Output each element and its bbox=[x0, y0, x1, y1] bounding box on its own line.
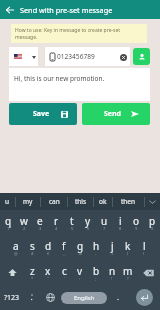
staticText: # bbox=[31, 251, 34, 256]
button[interactable]: Shift bbox=[0, 260, 24, 285]
staticText: o bbox=[133, 214, 140, 228]
staticText: 0123456789 bbox=[57, 52, 95, 61]
button[interactable] bbox=[23, 285, 40, 310]
button[interactable]: Clear bbox=[118, 52, 128, 62]
staticText: Hi, this is our new promotion. bbox=[14, 74, 105, 83]
button[interactable]: ?123 bbox=[0, 285, 23, 310]
button[interactable]: u bbox=[0, 193, 15, 210]
button[interactable]: i bbox=[112, 210, 128, 235]
staticText: ) bbox=[143, 251, 145, 256]
button[interactable]: Change language bbox=[40, 285, 61, 310]
button[interactable]: Hi, this is our new promotion. bbox=[9, 68, 150, 101]
button[interactable]: y bbox=[80, 210, 96, 235]
staticText: b bbox=[93, 264, 100, 278]
staticText: my bbox=[23, 197, 33, 206]
staticText: 1 bbox=[7, 226, 10, 231]
staticText: s bbox=[30, 239, 35, 253]
staticText: ok bbox=[99, 197, 107, 206]
staticText: 7 bbox=[103, 226, 106, 231]
staticText: v bbox=[77, 264, 83, 278]
button[interactable]: w bbox=[16, 210, 32, 235]
staticText: l bbox=[143, 239, 146, 253]
staticText: ( bbox=[127, 251, 129, 256]
button[interactable]: f bbox=[56, 235, 72, 260]
button[interactable]: z bbox=[24, 260, 40, 285]
staticText: 8 bbox=[119, 226, 122, 231]
staticText: u bbox=[101, 214, 108, 228]
staticText: d bbox=[45, 239, 52, 253]
staticText: Send with pre-set message bbox=[20, 5, 113, 15]
button[interactable]: h bbox=[88, 235, 104, 260]
staticText: g bbox=[77, 239, 84, 253]
button[interactable]: ok bbox=[94, 193, 112, 210]
button[interactable]: t bbox=[64, 210, 80, 235]
button[interactable]: then bbox=[113, 193, 144, 210]
staticText: 3 bbox=[39, 226, 42, 231]
button[interactable]: q bbox=[0, 210, 16, 235]
button[interactable]: 0123456789 bbox=[45, 47, 130, 66]
staticText: 9 bbox=[135, 226, 138, 231]
button[interactable]: More suggestions bbox=[145, 193, 160, 210]
staticText: e bbox=[37, 214, 43, 228]
button[interactable]: b bbox=[88, 260, 104, 285]
staticText: How to use: Key in message to create pre… bbox=[15, 27, 121, 41]
button[interactable]: l bbox=[136, 235, 152, 260]
staticText: ! bbox=[111, 276, 113, 281]
button[interactable]: x bbox=[40, 260, 56, 285]
staticText: & bbox=[79, 251, 82, 256]
button[interactable]: a bbox=[8, 235, 24, 260]
button[interactable] bbox=[107, 285, 129, 310]
staticText: 4 bbox=[55, 226, 58, 231]
button[interactable]: Save bbox=[9, 103, 77, 125]
staticText: f bbox=[62, 239, 66, 253]
staticText: a bbox=[13, 239, 19, 253]
button[interactable]: r bbox=[48, 210, 64, 235]
staticText: - bbox=[95, 251, 97, 256]
button[interactable]: Backspace bbox=[136, 260, 160, 285]
button[interactable]: o bbox=[128, 210, 144, 235]
button[interactable]: Select country code bbox=[9, 47, 38, 66]
button[interactable]: n bbox=[104, 260, 120, 285]
button[interactable]: k bbox=[120, 235, 136, 260]
button[interactable]: j bbox=[104, 235, 120, 260]
button[interactable]: d bbox=[40, 235, 56, 260]
staticText: 5 bbox=[71, 226, 74, 231]
button[interactable]: Pick contact bbox=[133, 48, 150, 65]
button[interactable]: g bbox=[72, 235, 88, 260]
button[interactable]: m bbox=[120, 260, 136, 285]
button[interactable]: v bbox=[72, 260, 88, 285]
staticText: ; bbox=[95, 276, 97, 281]
staticText: @ bbox=[14, 251, 18, 256]
staticText: x bbox=[45, 264, 51, 278]
staticText: then bbox=[121, 197, 136, 206]
staticText: 2 bbox=[23, 226, 26, 231]
staticText: English bbox=[74, 294, 95, 302]
staticText: ? bbox=[127, 276, 129, 281]
staticText: * bbox=[31, 276, 34, 281]
staticText: h bbox=[93, 239, 100, 253]
staticText: k bbox=[125, 239, 131, 253]
staticText: Save bbox=[33, 109, 50, 119]
button[interactable]: e bbox=[32, 210, 48, 235]
staticText: m bbox=[123, 264, 133, 278]
button[interactable]: Send bbox=[82, 103, 150, 125]
button[interactable]: u bbox=[96, 210, 112, 235]
button[interactable]: my bbox=[16, 193, 40, 210]
staticText: z bbox=[30, 264, 35, 278]
button[interactable]: Back bbox=[0, 0, 19, 19]
staticText: : bbox=[79, 276, 81, 281]
button[interactable]: Enter bbox=[129, 285, 160, 310]
staticText: 6 bbox=[87, 226, 90, 231]
staticText: y bbox=[85, 214, 91, 228]
button[interactable]: this bbox=[68, 193, 93, 210]
button[interactable]: c bbox=[56, 260, 72, 285]
staticText: p bbox=[149, 214, 156, 228]
staticText: ' bbox=[64, 276, 65, 281]
staticText: € bbox=[47, 251, 50, 256]
button[interactable]: p bbox=[144, 210, 160, 235]
staticText: _ bbox=[63, 251, 65, 256]
staticText: q bbox=[5, 214, 12, 228]
button[interactable]: English bbox=[61, 292, 107, 304]
button[interactable]: s bbox=[24, 235, 40, 260]
button[interactable]: can bbox=[41, 193, 67, 210]
